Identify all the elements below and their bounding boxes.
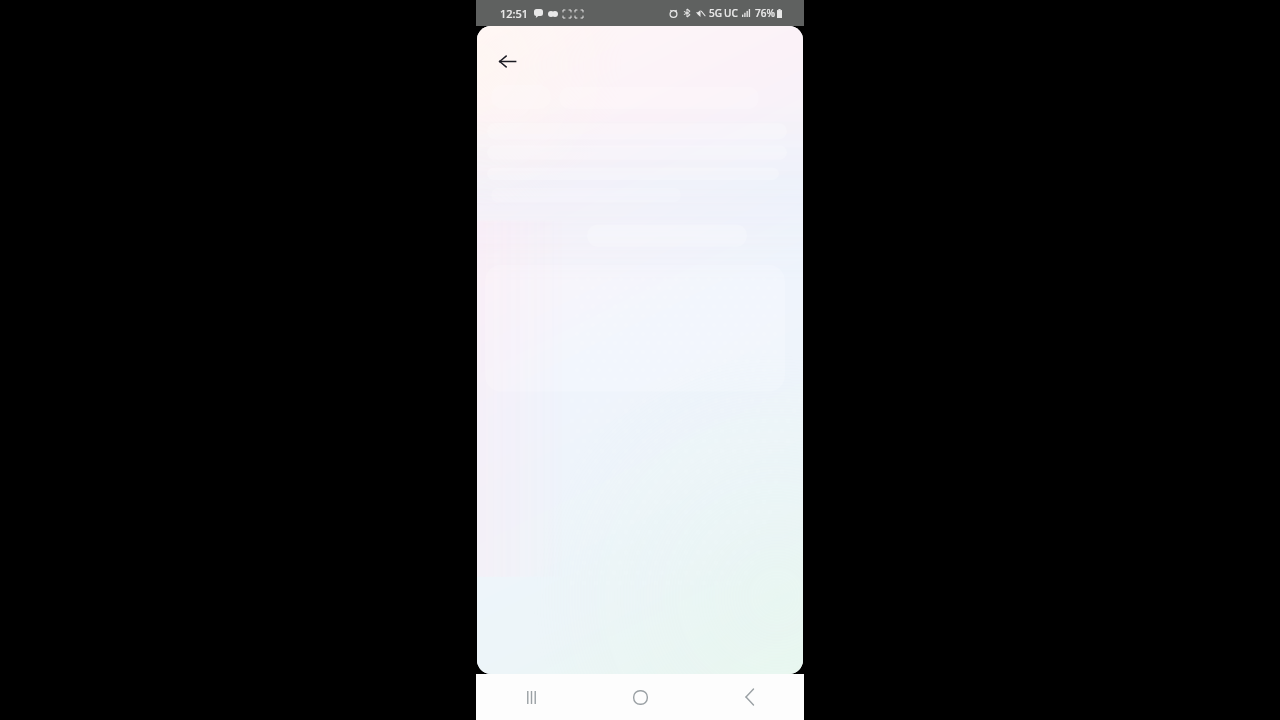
button[interactable]: Back [695, 674, 804, 720]
staticText: UC [724, 6, 738, 20]
button[interactable]: Back [487, 41, 527, 81]
button[interactable]: Recent apps [476, 674, 586, 720]
staticText: 76% [755, 6, 775, 20]
button[interactable]: Home [586, 674, 695, 720]
staticText: 5G [709, 6, 722, 20]
staticText: 12:51 [500, 6, 529, 21]
